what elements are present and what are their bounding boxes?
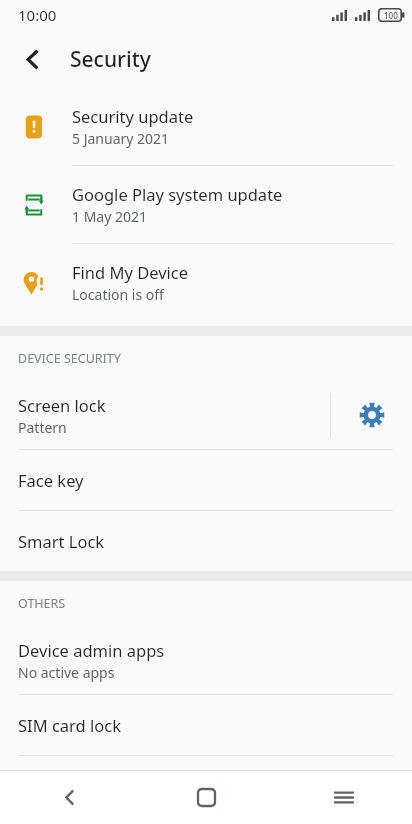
staticText: SIM card lock bbox=[18, 714, 121, 736]
staticText: 1 May 2021 bbox=[72, 207, 148, 226]
staticText: Security update bbox=[72, 105, 194, 127]
button[interactable]: Screen lock bbox=[0, 381, 330, 449]
button[interactable]: Google Play system update bbox=[0, 166, 412, 244]
button[interactable]: Device admin apps bbox=[0, 626, 412, 695]
staticText: Find My Device bbox=[72, 261, 189, 283]
button[interactable]: Recent apps bbox=[275, 771, 412, 824]
button[interactable]: SIM card lock bbox=[0, 695, 412, 756]
staticText: 5 January 2021 bbox=[72, 129, 170, 148]
staticText: 100 bbox=[384, 10, 398, 21]
staticText: Smart Lock bbox=[18, 530, 105, 552]
staticText: 10:00 bbox=[18, 5, 57, 25]
button[interactable]: Back bbox=[11, 38, 53, 80]
staticText: Pattern bbox=[18, 418, 67, 437]
staticText: Screen lock bbox=[18, 394, 106, 416]
button[interactable]: Find My Device bbox=[0, 244, 412, 321]
staticText: Device admin apps bbox=[18, 639, 165, 661]
button[interactable]: Screen lock settings bbox=[331, 381, 412, 449]
staticText: OTHERS bbox=[18, 595, 66, 612]
button[interactable]: Back bbox=[0, 771, 138, 824]
button[interactable]: Security update bbox=[0, 88, 412, 166]
staticText: No active apps bbox=[18, 663, 115, 682]
button[interactable]: Smart Lock bbox=[0, 511, 412, 571]
staticText: Google Play system update bbox=[72, 183, 283, 205]
staticText: Location is off bbox=[72, 285, 164, 304]
staticText: Security bbox=[70, 45, 151, 74]
staticText: DEVICE SECURITY bbox=[18, 350, 121, 367]
staticText: Face key bbox=[18, 469, 84, 491]
button[interactable]: Face key bbox=[0, 450, 412, 511]
button[interactable]: Home bbox=[138, 771, 275, 824]
